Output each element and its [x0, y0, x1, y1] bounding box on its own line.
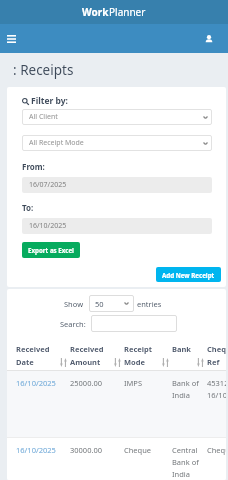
staticText: Work — [82, 5, 109, 19]
button[interactable]: Account — [201, 31, 216, 46]
button[interactable]: 16/10/2025 — [22, 218, 212, 234]
staticText: 16/07/2025 — [29, 180, 67, 190]
staticText: 30000.00 — [70, 445, 103, 455]
button[interactable]: All Client — [22, 109, 212, 125]
staticText: Bank of India — [172, 378, 199, 401]
staticText: Cheque — [207, 445, 226, 455]
staticText: Receipt Mode — [124, 344, 152, 367]
staticText: 16/10/2025 — [29, 221, 67, 231]
staticText: 45312 16/10 — [207, 378, 226, 401]
staticText: Export as Excel — [28, 246, 74, 254]
staticText: Bank — [172, 344, 192, 354]
staticText: Cheque — [124, 445, 152, 455]
staticText: 16/10/2025 — [16, 445, 56, 455]
button[interactable]: All Receipt Mode — [22, 135, 212, 151]
staticText: All Receipt Mode — [29, 138, 84, 148]
button[interactable]: 16/07/2025 — [22, 177, 212, 193]
staticText: Received Amount — [70, 344, 104, 367]
staticText: : Receipts — [13, 61, 74, 79]
button[interactable]: Menu — [4, 31, 19, 46]
button[interactable]: 16/10/2025 — [7, 438, 226, 480]
staticText: Add New Receipt — [162, 271, 215, 279]
staticText: IMPS — [124, 378, 142, 388]
staticText: Filter by: — [31, 95, 68, 107]
staticText: Received Date — [16, 344, 50, 367]
staticText: 16/10/2025 — [16, 378, 56, 388]
button[interactable]: 16/10/2025 — [7, 371, 226, 437]
staticText: Planner — [109, 5, 146, 19]
button[interactable]: 50 — [89, 295, 134, 312]
staticText: entries — [137, 299, 162, 309]
button[interactable]: Export as Excel — [22, 242, 80, 258]
staticText: To: — [22, 202, 34, 213]
button[interactable] — [91, 315, 177, 332]
button[interactable]: Add New Receipt — [156, 267, 221, 282]
staticText: Cheque Ref — [207, 344, 226, 367]
staticText: Search: — [60, 319, 86, 329]
staticText: All Client — [29, 112, 58, 122]
staticText: Show — [64, 299, 84, 309]
staticText: Central Bank of India — [172, 445, 199, 480]
staticText: 50 — [95, 299, 104, 309]
staticText: From: — [22, 161, 45, 172]
staticText: 25000.00 — [70, 378, 103, 388]
